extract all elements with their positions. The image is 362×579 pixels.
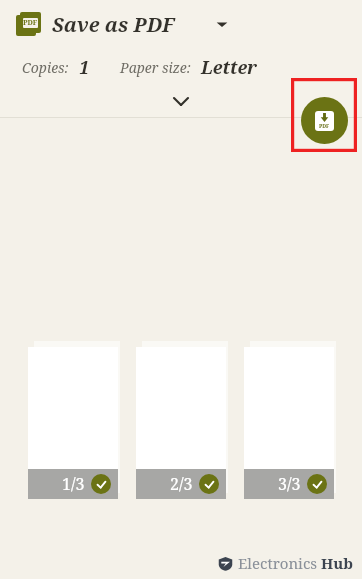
staticText: Electronics [238, 553, 321, 573]
staticText: Save as PDF [52, 11, 175, 38]
button[interactable]: Expand print options [154, 88, 208, 114]
staticText: 3/3 [278, 473, 301, 495]
staticText: 1/3 [62, 473, 85, 495]
button[interactable]: 3/3 [244, 347, 334, 499]
button[interactable]: 2/3 [136, 347, 226, 499]
button[interactable]: Save as PDF [301, 97, 348, 144]
staticText: 2/3 [170, 473, 193, 495]
button[interactable]: Copies: [22, 55, 90, 80]
staticText: PDF [319, 123, 330, 130]
staticText: Hub [321, 553, 354, 573]
staticText: Copies: [22, 58, 69, 77]
button[interactable]: 1/3 [28, 347, 118, 499]
staticText: PDF [23, 18, 38, 28]
button[interactable]: Paper size: [120, 55, 257, 80]
staticText: 1 [79, 55, 90, 80]
staticText: Letter [201, 55, 257, 80]
button[interactable]: PDF [0, 0, 362, 48]
staticText: Paper size: [120, 58, 191, 77]
